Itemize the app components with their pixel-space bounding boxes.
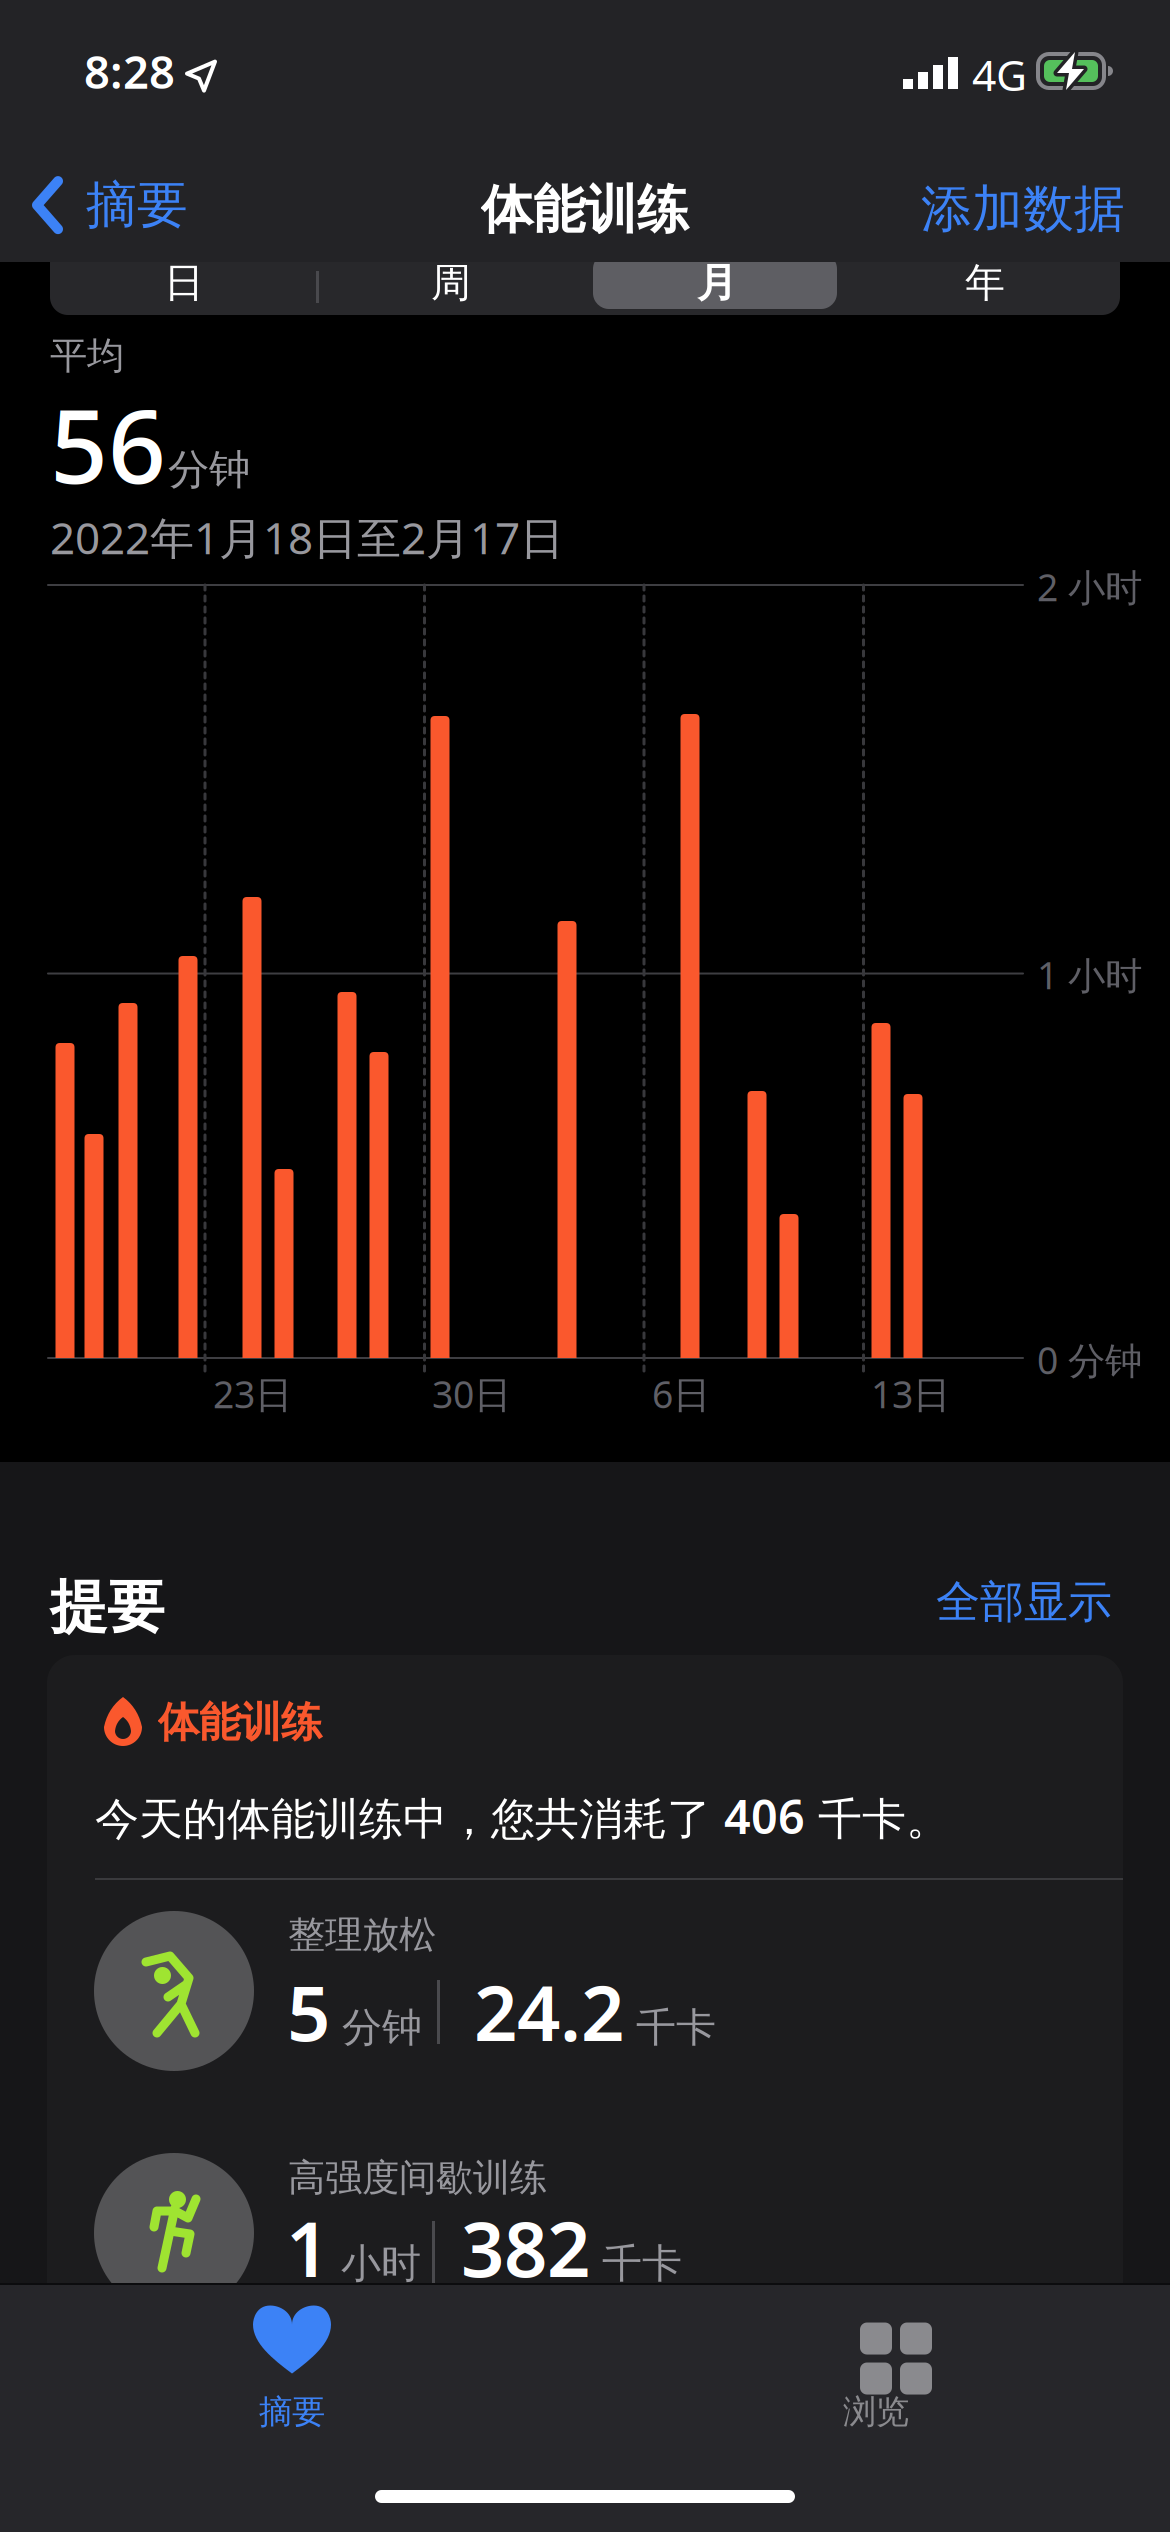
staticText: 分钟 (168, 444, 250, 495)
staticText: 小时 (341, 2239, 421, 2288)
staticText: 13日 (871, 1369, 950, 1419)
staticText: 1 小时 (1037, 950, 1142, 1000)
staticText: 4G (972, 46, 1027, 103)
staticText: 年 (965, 258, 1005, 307)
staticText: 全部显示 (936, 1575, 1112, 1629)
staticText: 6日 (652, 1369, 710, 1419)
staticText: 日 (164, 258, 204, 307)
button[interactable]: 年 (860, 255, 1110, 311)
staticText: 周 (431, 258, 471, 307)
staticText: 23日 (213, 1369, 292, 1419)
button[interactable]: 周 (326, 255, 576, 311)
staticText: 月 (697, 258, 737, 307)
staticText: 千卡 (602, 2239, 682, 2288)
staticText: 今天的体能训练中，您共消耗了 406 千卡。 (95, 1785, 950, 1847)
staticText: 1 (286, 2197, 329, 2298)
staticText: 整理放松 (288, 1912, 436, 1958)
staticText: 浏览 (843, 2391, 909, 2432)
staticText: 5 (287, 1961, 330, 2062)
staticText: 8:28 (84, 41, 175, 101)
button[interactable]: 日 (59, 255, 309, 311)
staticText: 382 (461, 2197, 590, 2298)
staticText: 体能训练 (481, 178, 689, 242)
staticText: 提要 (50, 1572, 164, 1642)
staticText: 2 小时 (1037, 562, 1142, 612)
staticText: 摘要 (259, 2391, 325, 2432)
staticText: 添加数据 (921, 178, 1125, 240)
staticText: 24.2 (474, 1961, 624, 2062)
button[interactable]: 全部显示 (936, 1575, 1112, 1629)
staticText: 体能训练 (158, 1697, 322, 1748)
staticText: 2022年1月18日至2月17日 (50, 508, 564, 566)
staticText: 分钟 (342, 2003, 422, 2052)
button[interactable]: 浏览 (756, 2298, 996, 2438)
button[interactable]: 添加数据 (921, 178, 1125, 240)
staticText: 56 (50, 377, 166, 512)
staticText: 高强度间歇训练 (288, 2155, 547, 2201)
staticText: 千卡 (636, 2003, 716, 2052)
button[interactable]: 摘要 (32, 174, 188, 236)
button[interactable]: 月 (592, 255, 842, 311)
button[interactable]: 摘要 (172, 2298, 412, 2438)
staticText: 0 分钟 (1037, 1335, 1142, 1385)
staticText: 平均 (50, 333, 124, 379)
staticText: 摘要 (86, 174, 188, 236)
staticText: 30日 (432, 1369, 511, 1419)
